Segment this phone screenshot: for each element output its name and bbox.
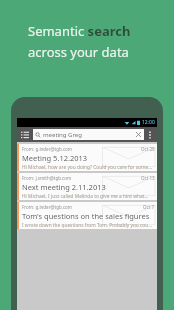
button[interactable]: List view	[19, 129, 31, 141]
staticText: Semantic search	[28, 22, 131, 40]
staticText: Tom's questions on the sales figures	[22, 211, 150, 221]
button[interactable]: From: j.smith@tgb.com	[17, 173, 157, 200]
staticText: meeting Greg	[43, 131, 135, 139]
staticText: across your data	[28, 43, 129, 61]
button[interactable]: meeting Greg	[33, 129, 144, 140]
staticText: Oct 7	[143, 204, 155, 210]
staticText: From: g.inder@tgb.com	[22, 146, 141, 152]
button[interactable]: Clear search	[135, 131, 142, 138]
staticText: 12:00	[142, 119, 155, 126]
staticText: From: j.smith@tgb.com	[22, 175, 141, 181]
staticText: Hi Michael, I just called Melinda to giv…	[22, 193, 149, 200]
staticText: From: g.inder@tgb.com	[22, 204, 143, 210]
staticText: I wrote down the questions from Tom. Pro…	[22, 222, 153, 229]
button[interactable]: From: g.inder@tgb.com	[17, 202, 157, 229]
staticText: Next meeting 2.11.2013	[22, 182, 106, 192]
button[interactable]: From: g.inder@tgb.com	[17, 144, 157, 171]
button[interactable]: More options	[145, 130, 155, 140]
staticText: Meeting 5.12.2013	[22, 153, 88, 163]
staticText: Oct 13	[141, 175, 155, 181]
staticText: Hi Michael, how are you doing? Could you…	[22, 164, 153, 171]
staticText: Oct 29	[141, 146, 155, 152]
